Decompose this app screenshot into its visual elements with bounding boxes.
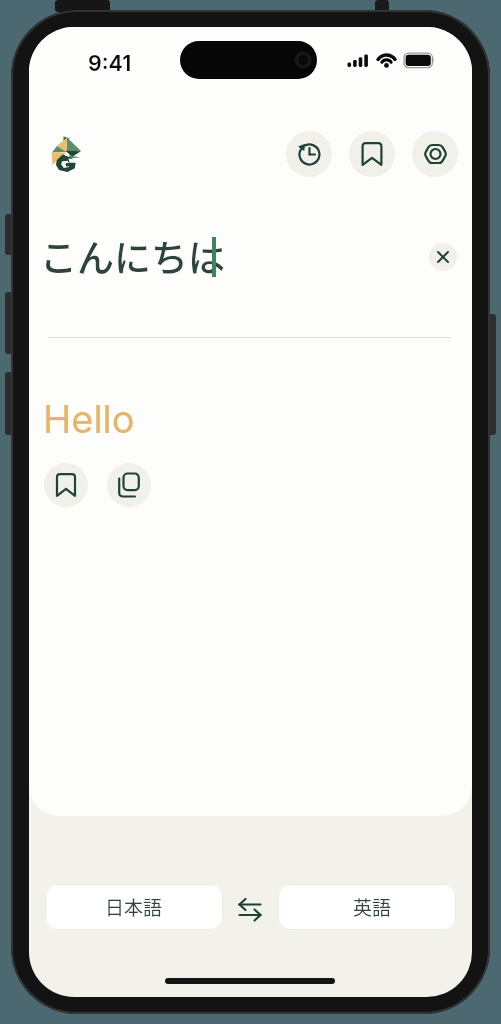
button[interactable]: 英語 — [278, 884, 456, 930]
staticText: 英語 — [353, 893, 392, 921]
button[interactable] — [429, 243, 457, 271]
button[interactable] — [48, 133, 88, 173]
staticText: 9:41 — [88, 50, 132, 76]
button[interactable] — [235, 895, 265, 925]
button[interactable] — [349, 131, 395, 177]
button[interactable] — [44, 463, 88, 507]
staticText: Hello — [43, 396, 135, 442]
staticText: こんにちは — [40, 229, 225, 283]
button[interactable] — [412, 131, 458, 177]
button[interactable] — [286, 131, 332, 177]
button[interactable] — [107, 463, 151, 507]
staticText: 日本語 — [105, 893, 163, 921]
button[interactable]: 日本語 — [45, 884, 223, 930]
